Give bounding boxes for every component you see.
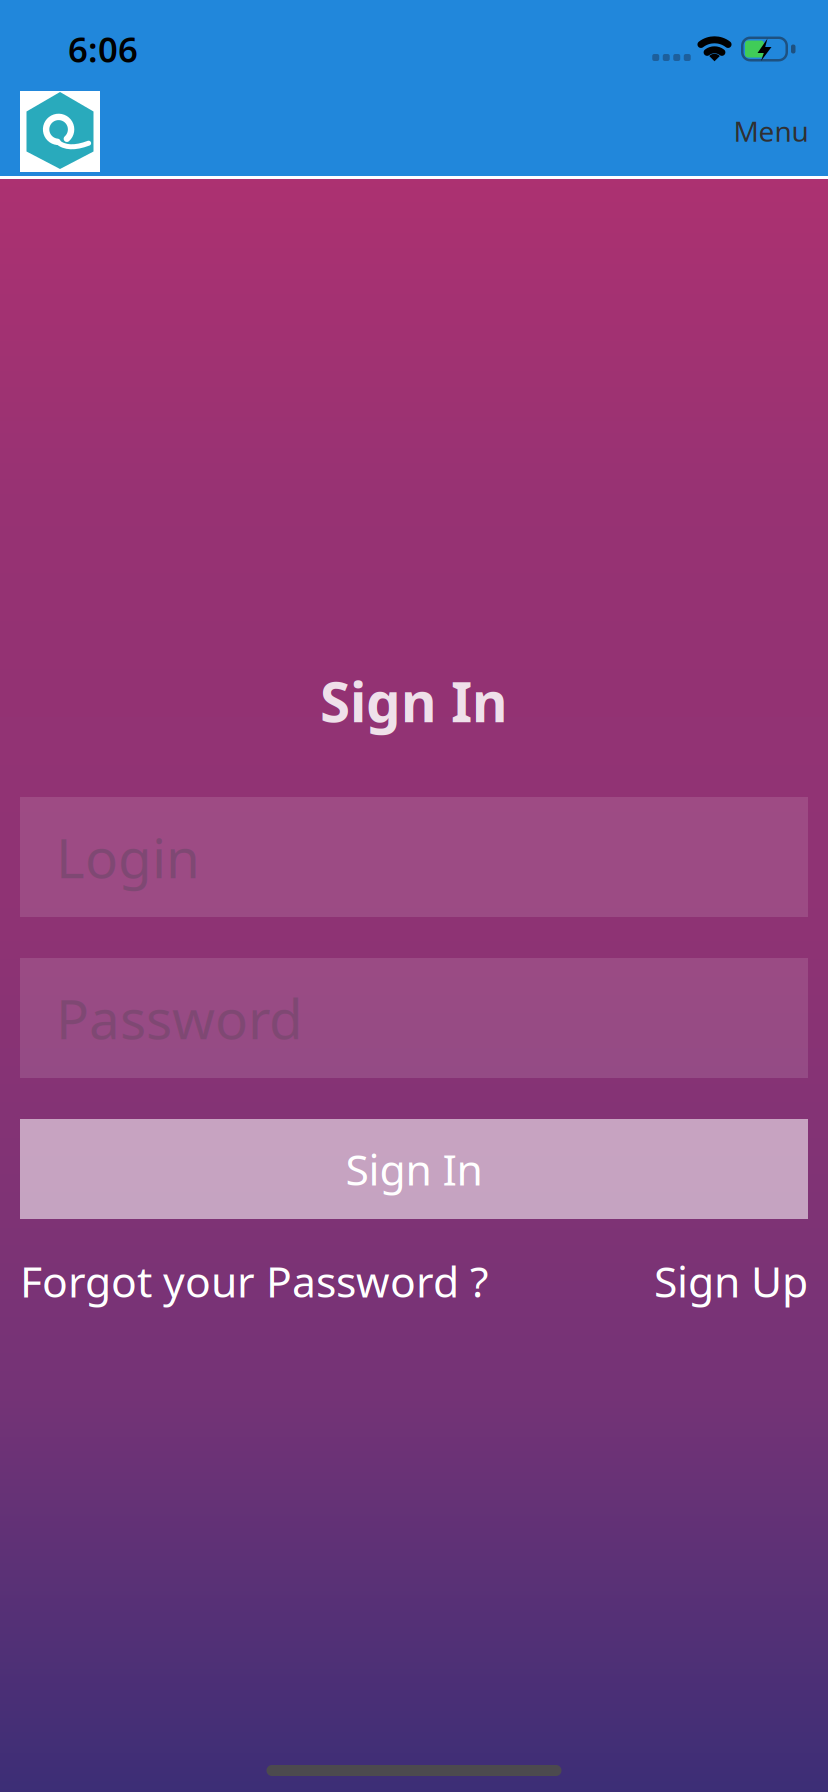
button[interactable]: Password xyxy=(20,958,808,1078)
staticText: 6:06 xyxy=(68,26,138,72)
staticText: Login xyxy=(56,821,200,893)
button[interactable]: Forgot your Password ? xyxy=(20,1253,489,1309)
button[interactable]: Sign Up xyxy=(654,1253,808,1309)
staticText: Menu xyxy=(733,112,808,150)
staticText: Sign In xyxy=(345,1141,482,1197)
staticText: Forgot your Password ? xyxy=(20,1253,489,1309)
staticText: Sign In xyxy=(320,665,508,737)
button[interactable]: Sign In xyxy=(20,1119,808,1219)
button[interactable]: Login xyxy=(20,797,808,917)
staticText: Password xyxy=(56,982,303,1054)
button[interactable]: Menu xyxy=(733,112,808,150)
staticText: Sign Up xyxy=(654,1253,808,1309)
